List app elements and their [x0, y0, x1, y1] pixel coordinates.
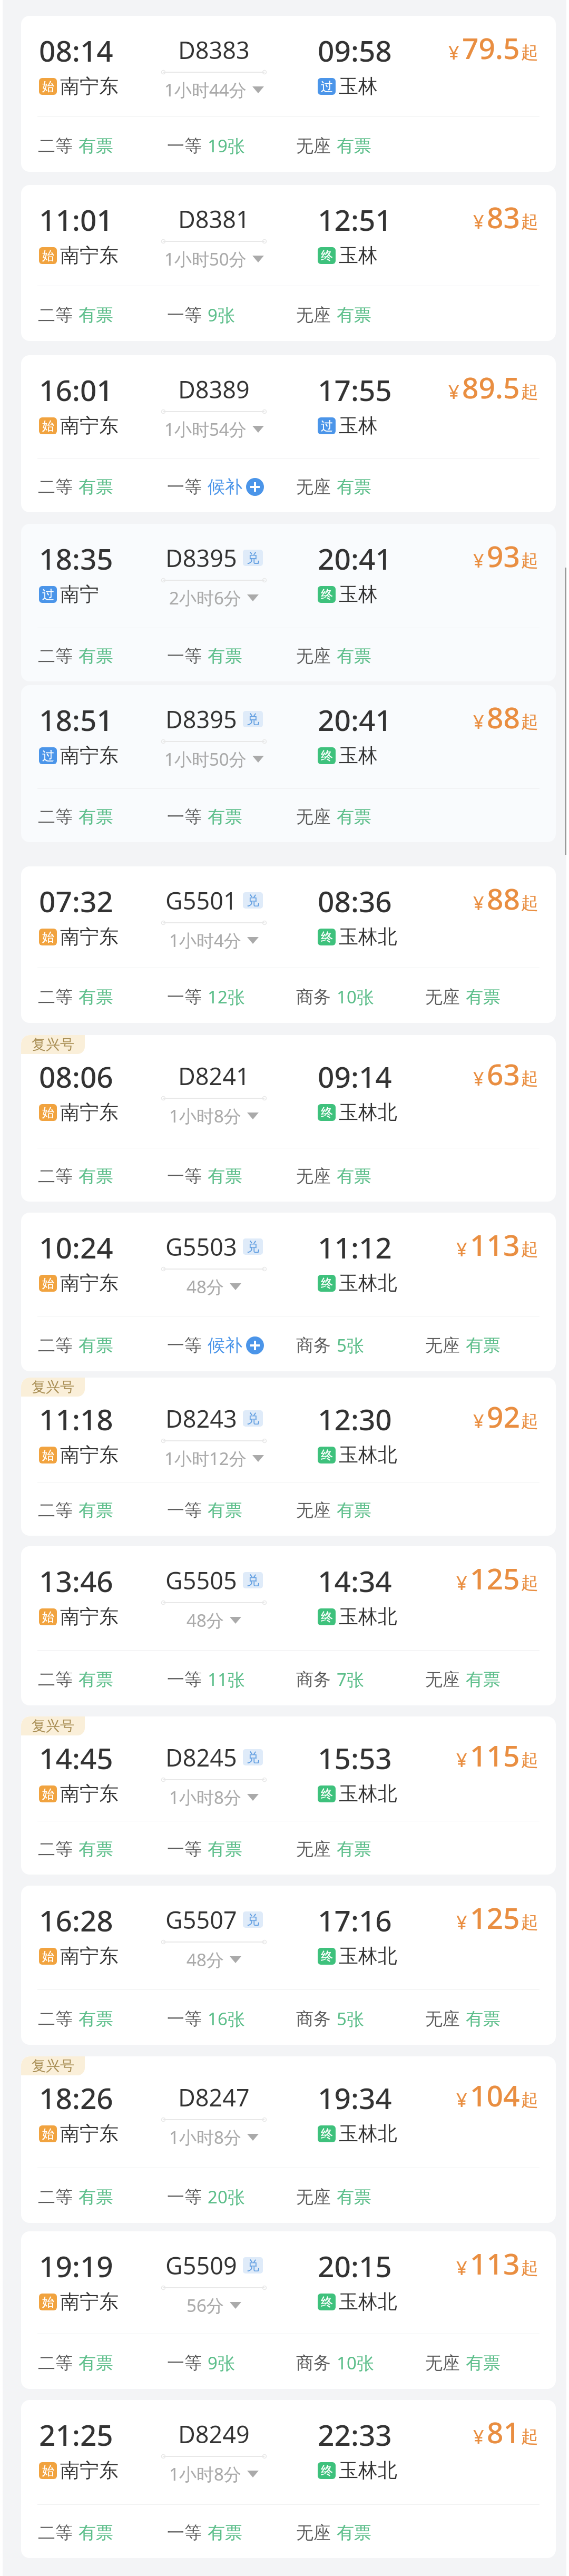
staticText: 有票: [466, 1334, 501, 1357]
staticText: 兑: [247, 1573, 259, 1588]
staticText: 过: [321, 79, 333, 94]
staticText: 2小时6分: [169, 586, 241, 610]
button[interactable]: 复兴号: [21, 1378, 556, 1536]
staticText: G5509: [165, 2249, 237, 2281]
staticText: 起: [521, 892, 538, 914]
staticText: 商务: [296, 986, 331, 1008]
staticText: 玉林北: [339, 1944, 397, 1968]
staticText: 终: [321, 930, 333, 945]
staticText: 有票: [337, 806, 371, 828]
staticText: 南宁东: [60, 924, 119, 949]
button[interactable]: 16:01: [21, 355, 556, 512]
staticText: 有票: [466, 986, 501, 1008]
staticText: ¥: [456, 2087, 467, 2113]
button[interactable]: 07:32: [21, 866, 556, 1023]
button[interactable]: 11:01: [21, 185, 556, 341]
staticText: 无座: [296, 806, 331, 828]
staticText: 终: [321, 587, 333, 602]
staticText: 玉林北: [339, 1271, 397, 1295]
staticText: 有票: [79, 2352, 113, 2374]
staticText: 89.5: [462, 367, 520, 407]
button[interactable]: 复兴号: [21, 1716, 556, 1875]
staticText: 终: [321, 2295, 333, 2310]
staticText: 1小时12分: [164, 1447, 247, 1470]
staticText: 无座: [296, 2522, 331, 2544]
staticText: 48分: [187, 1608, 224, 1632]
staticText: 有票: [466, 1668, 501, 1691]
staticText: G5507: [165, 1904, 237, 1936]
staticText: 玉林北: [339, 2121, 397, 2146]
staticText: 二等: [38, 2008, 73, 2030]
staticText: ¥: [448, 40, 459, 65]
staticText: 南宁东: [60, 413, 119, 438]
staticText: 二等: [38, 645, 73, 667]
staticText: 9张: [208, 2351, 235, 2375]
staticText: D8395: [165, 703, 237, 735]
button[interactable]: 复兴号: [21, 1035, 556, 1202]
staticText: 18:51: [39, 700, 113, 739]
staticText: 1小时8分: [169, 1785, 241, 1809]
staticText: 二等: [38, 986, 73, 1008]
staticText: 商务: [296, 1334, 331, 1357]
staticText: 有票: [208, 1499, 242, 1521]
staticText: 有票: [337, 2522, 371, 2544]
staticText: 14:45: [39, 1738, 113, 1778]
staticText: 1小时8分: [169, 2462, 241, 2486]
staticText: 玉林北: [339, 1781, 397, 1806]
staticText: 1小时8分: [169, 1104, 241, 1128]
staticText: ¥: [473, 890, 484, 916]
staticText: ¥: [473, 209, 484, 235]
staticText: 商务: [296, 2352, 331, 2374]
staticText: 玉林北: [339, 924, 397, 949]
staticText: 9张: [208, 303, 235, 327]
staticText: 南宁东: [60, 1442, 119, 1467]
button[interactable]: 08:14: [21, 16, 556, 172]
staticText: ¥: [456, 1747, 467, 1773]
staticText: 有票: [79, 1334, 113, 1357]
staticText: 有票: [79, 1499, 113, 1521]
button[interactable]: 18:51: [21, 685, 556, 842]
staticText: D8383: [178, 34, 250, 66]
staticText: 有票: [79, 2186, 113, 2208]
staticText: 终: [321, 1105, 333, 1120]
staticText: 玉林: [339, 582, 378, 607]
staticText: 1小时50分: [164, 747, 247, 771]
button[interactable]: 13:46: [21, 1546, 556, 1705]
staticText: 有票: [79, 476, 113, 498]
staticText: 复兴号: [32, 1378, 74, 1396]
staticText: ¥: [456, 1236, 467, 1262]
staticText: 有票: [337, 1838, 371, 1860]
staticText: 南宁东: [60, 743, 119, 768]
staticText: 19:34: [318, 2078, 392, 2118]
staticText: ¥: [473, 548, 484, 573]
button[interactable]: 10:24: [21, 1213, 556, 1371]
staticText: 有票: [79, 1165, 113, 1187]
staticText: 无座: [296, 645, 331, 667]
staticText: ¥: [473, 709, 484, 735]
staticText: 113: [470, 2243, 520, 2283]
staticText: 115: [470, 1735, 520, 1775]
button[interactable]: 16:28: [21, 1886, 556, 2045]
button[interactable]: 19:19: [21, 2231, 556, 2389]
staticText: 过: [42, 587, 54, 602]
staticText: 11:18: [39, 1399, 113, 1439]
button[interactable]: 21:25: [21, 2400, 556, 2558]
staticText: 一等: [167, 806, 202, 828]
button[interactable]: 复兴号: [21, 2056, 556, 2223]
staticText: 14:34: [318, 1561, 392, 1601]
staticText: 16张: [208, 2007, 245, 2031]
staticText: 有票: [466, 2008, 501, 2030]
staticText: 过: [321, 418, 333, 434]
staticText: 玉林北: [339, 1100, 397, 1125]
staticText: ¥: [456, 1909, 467, 1935]
staticText: 始: [42, 1105, 54, 1120]
staticText: 二等: [38, 2186, 73, 2208]
staticText: 1小时54分: [164, 417, 247, 441]
staticText: 08:14: [39, 31, 113, 70]
staticText: 复兴号: [32, 2057, 74, 2075]
button[interactable]: 18:35: [21, 524, 556, 681]
staticText: 1小时50分: [164, 247, 247, 271]
staticText: 10张: [337, 2351, 374, 2375]
staticText: 48分: [187, 1948, 224, 1972]
staticText: 起: [521, 1410, 538, 1432]
